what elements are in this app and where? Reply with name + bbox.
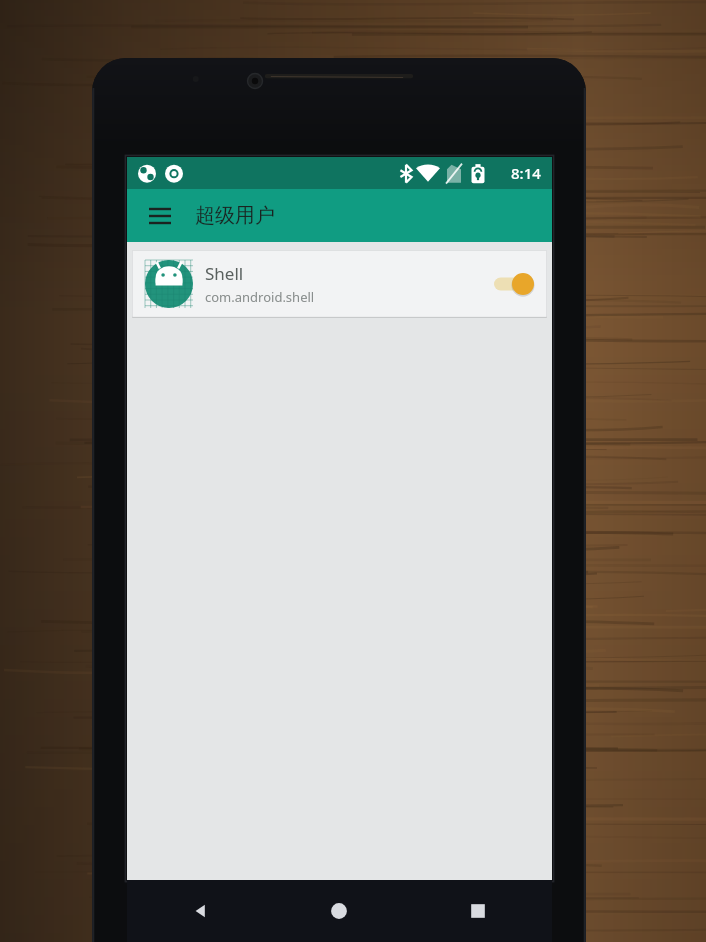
button[interactable]: Back xyxy=(177,888,223,934)
button[interactable]: Recent apps xyxy=(455,888,501,934)
staticText: 超级用户 xyxy=(195,203,275,228)
staticText: com.android.shell xyxy=(205,288,315,306)
staticText: 8:14 xyxy=(511,163,541,183)
button[interactable]: Home xyxy=(316,888,362,934)
button[interactable]: Open navigation drawer xyxy=(141,197,179,235)
button[interactable]: Shell xyxy=(132,250,547,318)
staticText: Shell xyxy=(205,262,244,285)
other: System navigation bar xyxy=(127,880,552,942)
button[interactable]: Toggle superuser access for Shell xyxy=(486,267,534,301)
